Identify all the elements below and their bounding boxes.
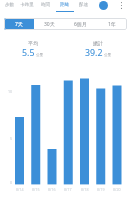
button[interactable]: 時間 bbox=[36, 0, 55, 10]
staticText: 30天 bbox=[44, 21, 55, 28]
staticText: 7天 bbox=[15, 21, 23, 28]
staticText: 配速 bbox=[79, 2, 88, 8]
button[interactable]: 步數 bbox=[0, 0, 18, 10]
staticText: 平均 bbox=[28, 40, 38, 46]
staticText: 距離 bbox=[60, 2, 69, 8]
staticText: 10 bbox=[6, 89, 12, 94]
button[interactable]: 配速 bbox=[74, 0, 93, 10]
staticText: 卡路里 bbox=[20, 2, 34, 8]
staticText: 公里 bbox=[104, 53, 112, 58]
staticText: 公里 bbox=[36, 53, 44, 58]
staticText: 總計 bbox=[93, 40, 103, 46]
button[interactable]: 卡路里 bbox=[18, 0, 36, 10]
staticText: 6個月 bbox=[74, 21, 87, 28]
staticText: 5 bbox=[6, 136, 12, 141]
staticText: 8/20 bbox=[113, 187, 121, 192]
staticText: 0 bbox=[6, 180, 12, 185]
staticText: 時間 bbox=[41, 2, 50, 8]
button[interactable]: 30天 bbox=[34, 18, 65, 30]
staticText: 8/16 bbox=[48, 187, 56, 192]
button[interactable]: 1年 bbox=[96, 18, 127, 30]
staticText: 8/18 bbox=[81, 187, 89, 192]
staticText: 步數 bbox=[5, 2, 14, 8]
staticText: 8/14 bbox=[16, 187, 24, 192]
button[interactable]: Profile bbox=[99, 1, 108, 10]
staticText: 8/15 bbox=[32, 187, 40, 192]
staticText: 8/17 bbox=[64, 187, 72, 192]
button[interactable]: 距離 bbox=[55, 0, 74, 10]
staticText: 39.2 bbox=[85, 47, 103, 59]
button[interactable]: 7天 bbox=[4, 18, 34, 30]
button[interactable]: More options bbox=[116, 0, 127, 11]
staticText: 5.5 bbox=[22, 47, 35, 59]
button[interactable]: 6個月 bbox=[65, 18, 96, 30]
staticText: 1年 bbox=[108, 21, 116, 28]
staticText: 8/19 bbox=[97, 187, 105, 192]
